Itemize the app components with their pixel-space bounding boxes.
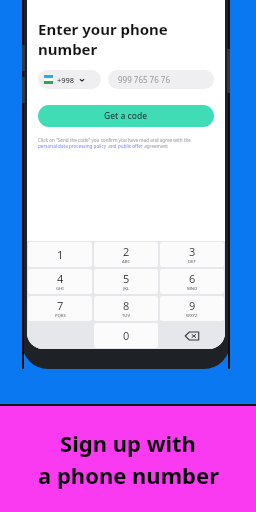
button[interactable]: Backspace — [159, 322, 225, 349]
staticText: Get a code — [104, 110, 148, 122]
staticText: 6 — [189, 271, 196, 286]
staticText: ABC — [122, 259, 131, 265]
staticText: WXYZ — [186, 313, 198, 319]
staticText: JKL — [123, 286, 130, 292]
staticText: MNO — [187, 286, 198, 292]
staticText: +998 — [57, 75, 75, 85]
button[interactable]: 9 — [160, 296, 224, 321]
button[interactable]: 0 — [94, 323, 158, 348]
staticText: 0 — [123, 328, 130, 343]
staticText: PQRS — [55, 313, 66, 319]
staticText: 7 — [57, 298, 64, 313]
staticText: 4 — [57, 271, 64, 286]
staticText: TUV — [122, 313, 131, 319]
button[interactable]: Get a code — [38, 105, 214, 127]
button[interactable]: 2 — [94, 242, 158, 267]
staticText: and — [107, 143, 118, 149]
staticText: 1 — [57, 247, 64, 262]
staticText: 999 765 76 76 — [118, 74, 170, 85]
staticText: a phone number — [38, 460, 219, 490]
button[interactable]: 4 — [28, 269, 92, 294]
staticText: 5 — [123, 271, 130, 286]
button[interactable]: 5 — [94, 269, 158, 294]
button[interactable]: 6 — [160, 269, 224, 294]
staticText: GHI — [56, 286, 64, 292]
staticText: agreement — [143, 143, 168, 149]
button[interactable]: personal data processing policy — [38, 143, 107, 149]
button[interactable]: 7 — [28, 296, 92, 321]
staticText: number — [38, 39, 98, 59]
button[interactable]: public offer — [118, 143, 143, 149]
staticText: DEF — [188, 259, 196, 265]
staticText: 9 — [189, 298, 196, 313]
staticText: 8 — [123, 298, 130, 313]
staticText: Enter your phone — [38, 19, 168, 39]
staticText: 3 — [189, 244, 196, 259]
button[interactable]: 3 — [160, 242, 224, 267]
button[interactable]: 8 — [94, 296, 158, 321]
staticText: Sign up with — [60, 428, 196, 458]
button[interactable]: 1 — [28, 242, 92, 267]
button[interactable]: 999 765 76 76 — [108, 70, 214, 89]
staticText: 2 — [123, 244, 130, 259]
button[interactable]: +998 — [38, 70, 101, 89]
staticText: Click on "Send the code" you confirm you… — [38, 137, 191, 143]
